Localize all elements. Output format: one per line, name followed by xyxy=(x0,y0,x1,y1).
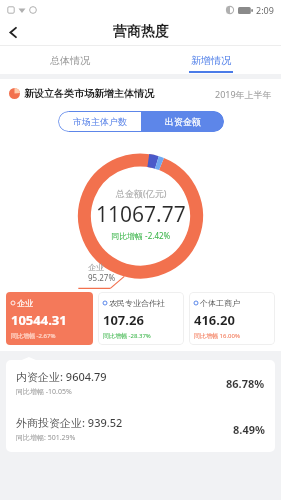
staticText: 同比增幅 -2.67% xyxy=(11,332,56,339)
button[interactable]: 内资企业: 9604.79 xyxy=(6,360,275,406)
staticText: 2:09 xyxy=(256,4,274,16)
staticText: 同比增幅 -10.05% xyxy=(16,387,72,397)
staticText: 2019年上半年 xyxy=(215,88,272,100)
staticText: 内资企业: 9604.79 xyxy=(16,369,107,384)
staticText: 416.20 xyxy=(194,311,235,329)
staticText: 总金额(亿元) xyxy=(116,187,167,199)
staticText: 107.26 xyxy=(103,311,144,329)
button[interactable]: 个体工商户 xyxy=(189,292,275,345)
staticText: 农民专业合作社 xyxy=(109,298,165,308)
staticText: 同比增幅 -2.42% xyxy=(111,230,171,241)
staticText: 总体情况 xyxy=(50,54,90,67)
staticText: 外商投资企业: 939.52 xyxy=(16,415,123,430)
button[interactable]: 企业 xyxy=(6,292,93,345)
staticText: 市场主体户数 xyxy=(73,116,127,127)
staticText: 同比增幅 16.00% xyxy=(194,332,240,339)
staticText: 95.27% xyxy=(88,272,116,283)
staticText: 86.78% xyxy=(226,376,265,391)
button[interactable]: 出资金额 xyxy=(141,111,224,132)
button[interactable]: 市场主体户数 xyxy=(58,111,141,132)
button[interactable]: Back xyxy=(0,19,26,45)
staticText: 同比增幅: 501.29% xyxy=(16,433,76,443)
staticText: 8.49% xyxy=(233,422,265,437)
staticText: 同比增幅 -28.37% xyxy=(103,332,151,339)
button[interactable]: 新增情况 xyxy=(140,46,281,74)
button[interactable]: 总体情况 xyxy=(0,46,140,74)
staticText: 出资金额 xyxy=(165,116,201,127)
staticText: 11067.77 xyxy=(96,200,186,229)
button[interactable]: 外商投资企业: 939.52 xyxy=(6,406,275,452)
staticText: 企业 xyxy=(17,298,33,308)
staticText: 个体工商户 xyxy=(200,298,240,308)
staticText: 10544.31 xyxy=(11,311,67,329)
button[interactable]: 农民专业合作社 xyxy=(98,292,184,345)
staticText: 新增情况 xyxy=(191,54,231,67)
staticText: 营商热度 xyxy=(113,23,169,41)
staticText: 新设立各类市场新增主体情况 xyxy=(24,87,154,100)
staticText: 企业 xyxy=(88,262,104,272)
